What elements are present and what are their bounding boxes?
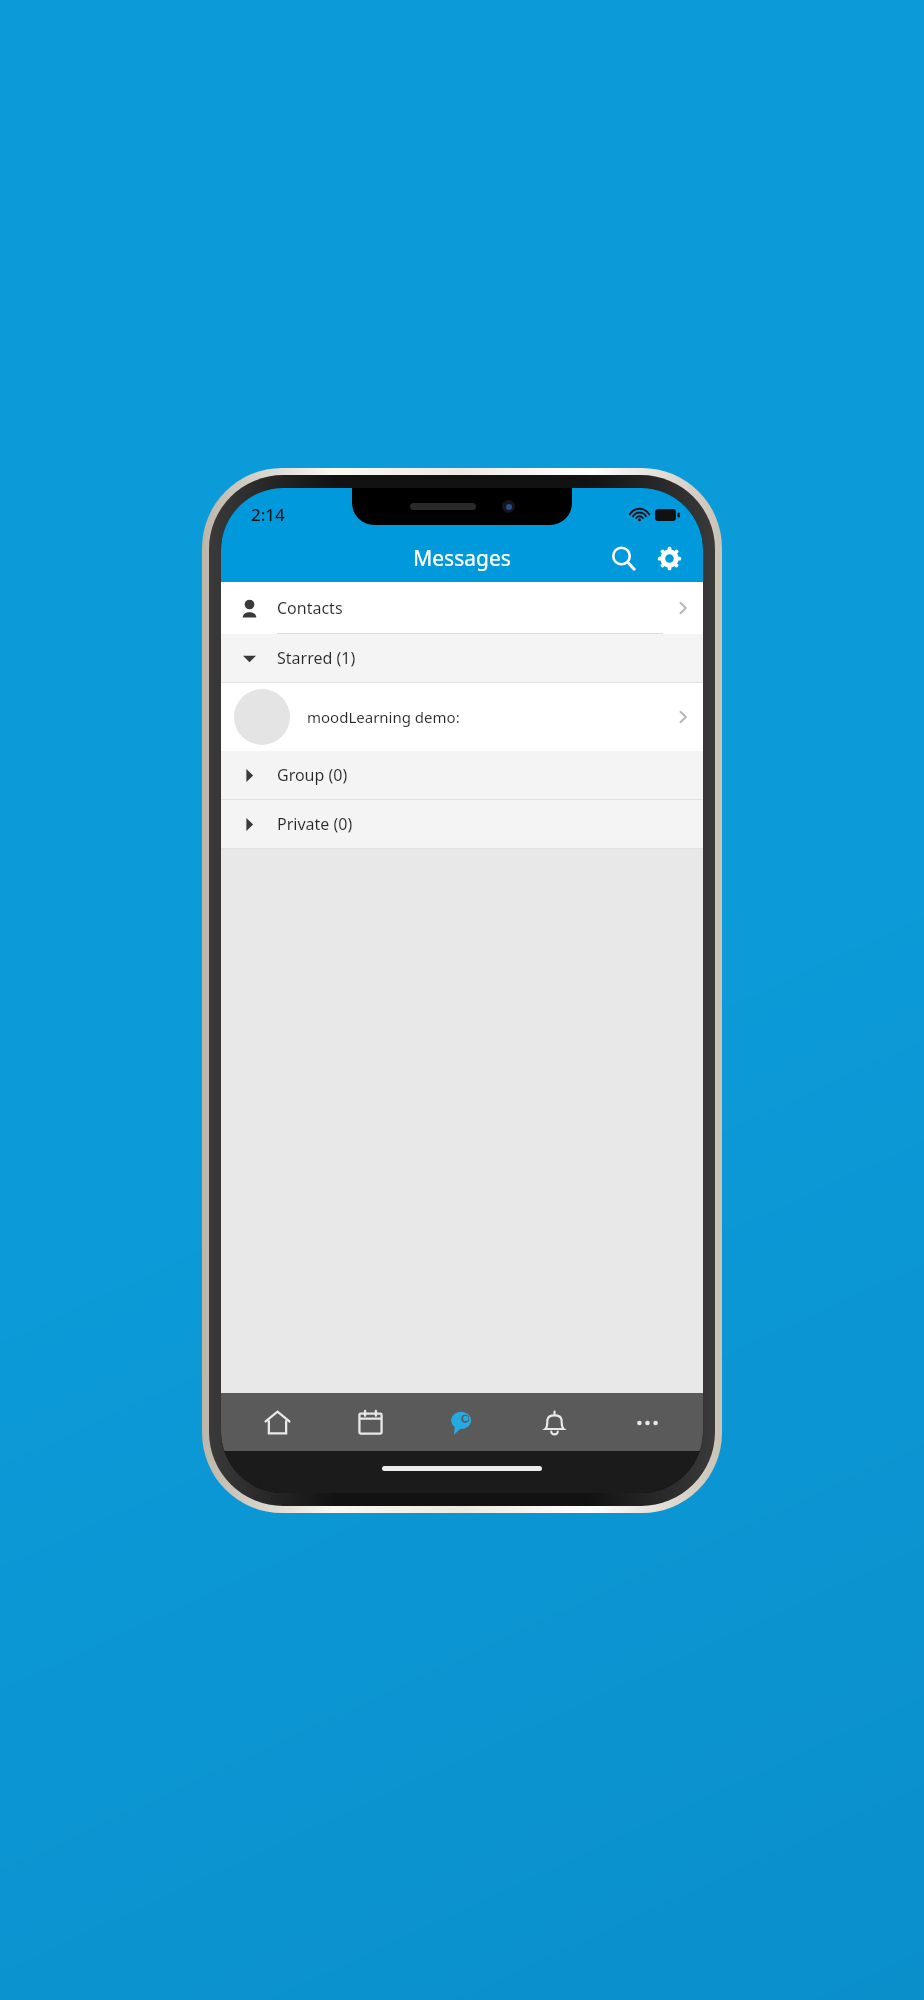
staticText: 2:14 xyxy=(251,503,285,526)
button[interactable]: Settings xyxy=(649,538,689,578)
button[interactable]: moodLearning demo: xyxy=(221,683,703,751)
button[interactable]: Search xyxy=(603,538,643,578)
button[interactable]: Contacts xyxy=(221,582,703,634)
staticText: Group (0) xyxy=(277,764,348,786)
button[interactable]: Private (0) xyxy=(221,800,703,849)
staticText: moodLearning demo: xyxy=(307,707,460,727)
button[interactable]: More xyxy=(619,1394,675,1450)
staticText: Starred (1) xyxy=(277,647,356,669)
staticText: Messages xyxy=(413,544,511,573)
button[interactable]: Group (0) xyxy=(221,751,703,800)
button[interactable]: Notifications xyxy=(526,1394,582,1450)
staticText: Contacts xyxy=(277,597,343,619)
button[interactable]: Starred (1) xyxy=(221,634,703,683)
button[interactable]: Home xyxy=(249,1394,305,1450)
button[interactable]: Messages xyxy=(434,1394,490,1450)
staticText: Private (0) xyxy=(277,813,353,835)
button[interactable]: Calendar xyxy=(342,1394,398,1450)
